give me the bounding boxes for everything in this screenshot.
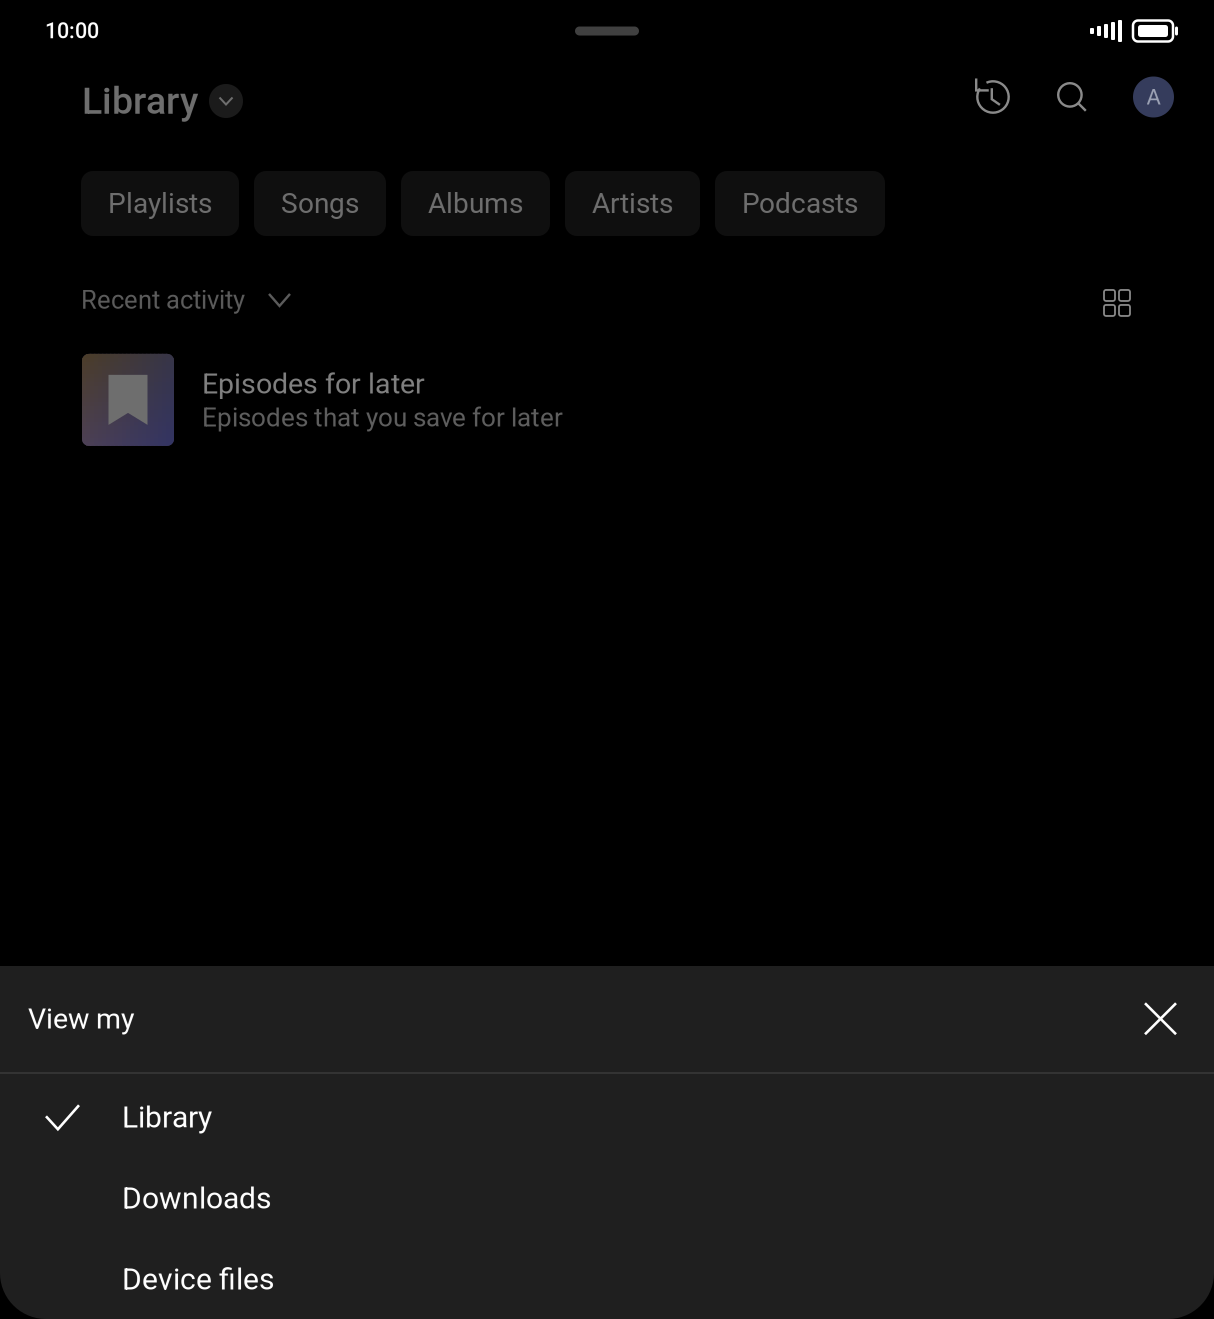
button[interactable]: Episodes for later: [0, 315, 1214, 446]
staticText: Podcasts: [742, 187, 858, 220]
staticText: Episodes for later: [202, 367, 425, 400]
button[interactable]: Library: [82, 79, 243, 123]
staticText: A: [1146, 84, 1160, 110]
staticText: Episodes that you save for later: [202, 402, 563, 433]
staticText: Albums: [428, 187, 523, 220]
button[interactable]: Account: [1133, 76, 1174, 117]
staticText: View my: [28, 1002, 134, 1035]
staticText: Songs: [281, 187, 359, 220]
staticText: Artists: [592, 187, 673, 220]
staticText: Playlists: [108, 187, 212, 220]
button[interactable]: Recent activity: [81, 285, 290, 315]
staticText: Recent activity: [81, 285, 245, 315]
button[interactable]: Device files: [0, 1239, 1214, 1319]
staticText: 10:00: [45, 18, 99, 44]
button[interactable]: Artists: [565, 171, 700, 236]
staticText: Library: [122, 1100, 212, 1135]
button[interactable]: Downloads: [0, 1158, 1214, 1239]
button[interactable]: Podcasts: [715, 171, 885, 236]
staticText: Device files: [122, 1262, 274, 1297]
button[interactable]: Library: [0, 1077, 1214, 1158]
button[interactable]: Close: [1145, 1003, 1176, 1034]
button[interactable]: Playlists: [81, 171, 239, 236]
staticText: Library: [82, 79, 198, 123]
button[interactable]: Albums: [401, 171, 550, 236]
button[interactable]: Songs: [254, 171, 386, 236]
button[interactable]: Switch to grid view: [1104, 290, 1130, 316]
staticText: Downloads: [122, 1181, 271, 1216]
button[interactable]: History: [975, 80, 1009, 114]
button[interactable]: Search: [1057, 82, 1087, 112]
